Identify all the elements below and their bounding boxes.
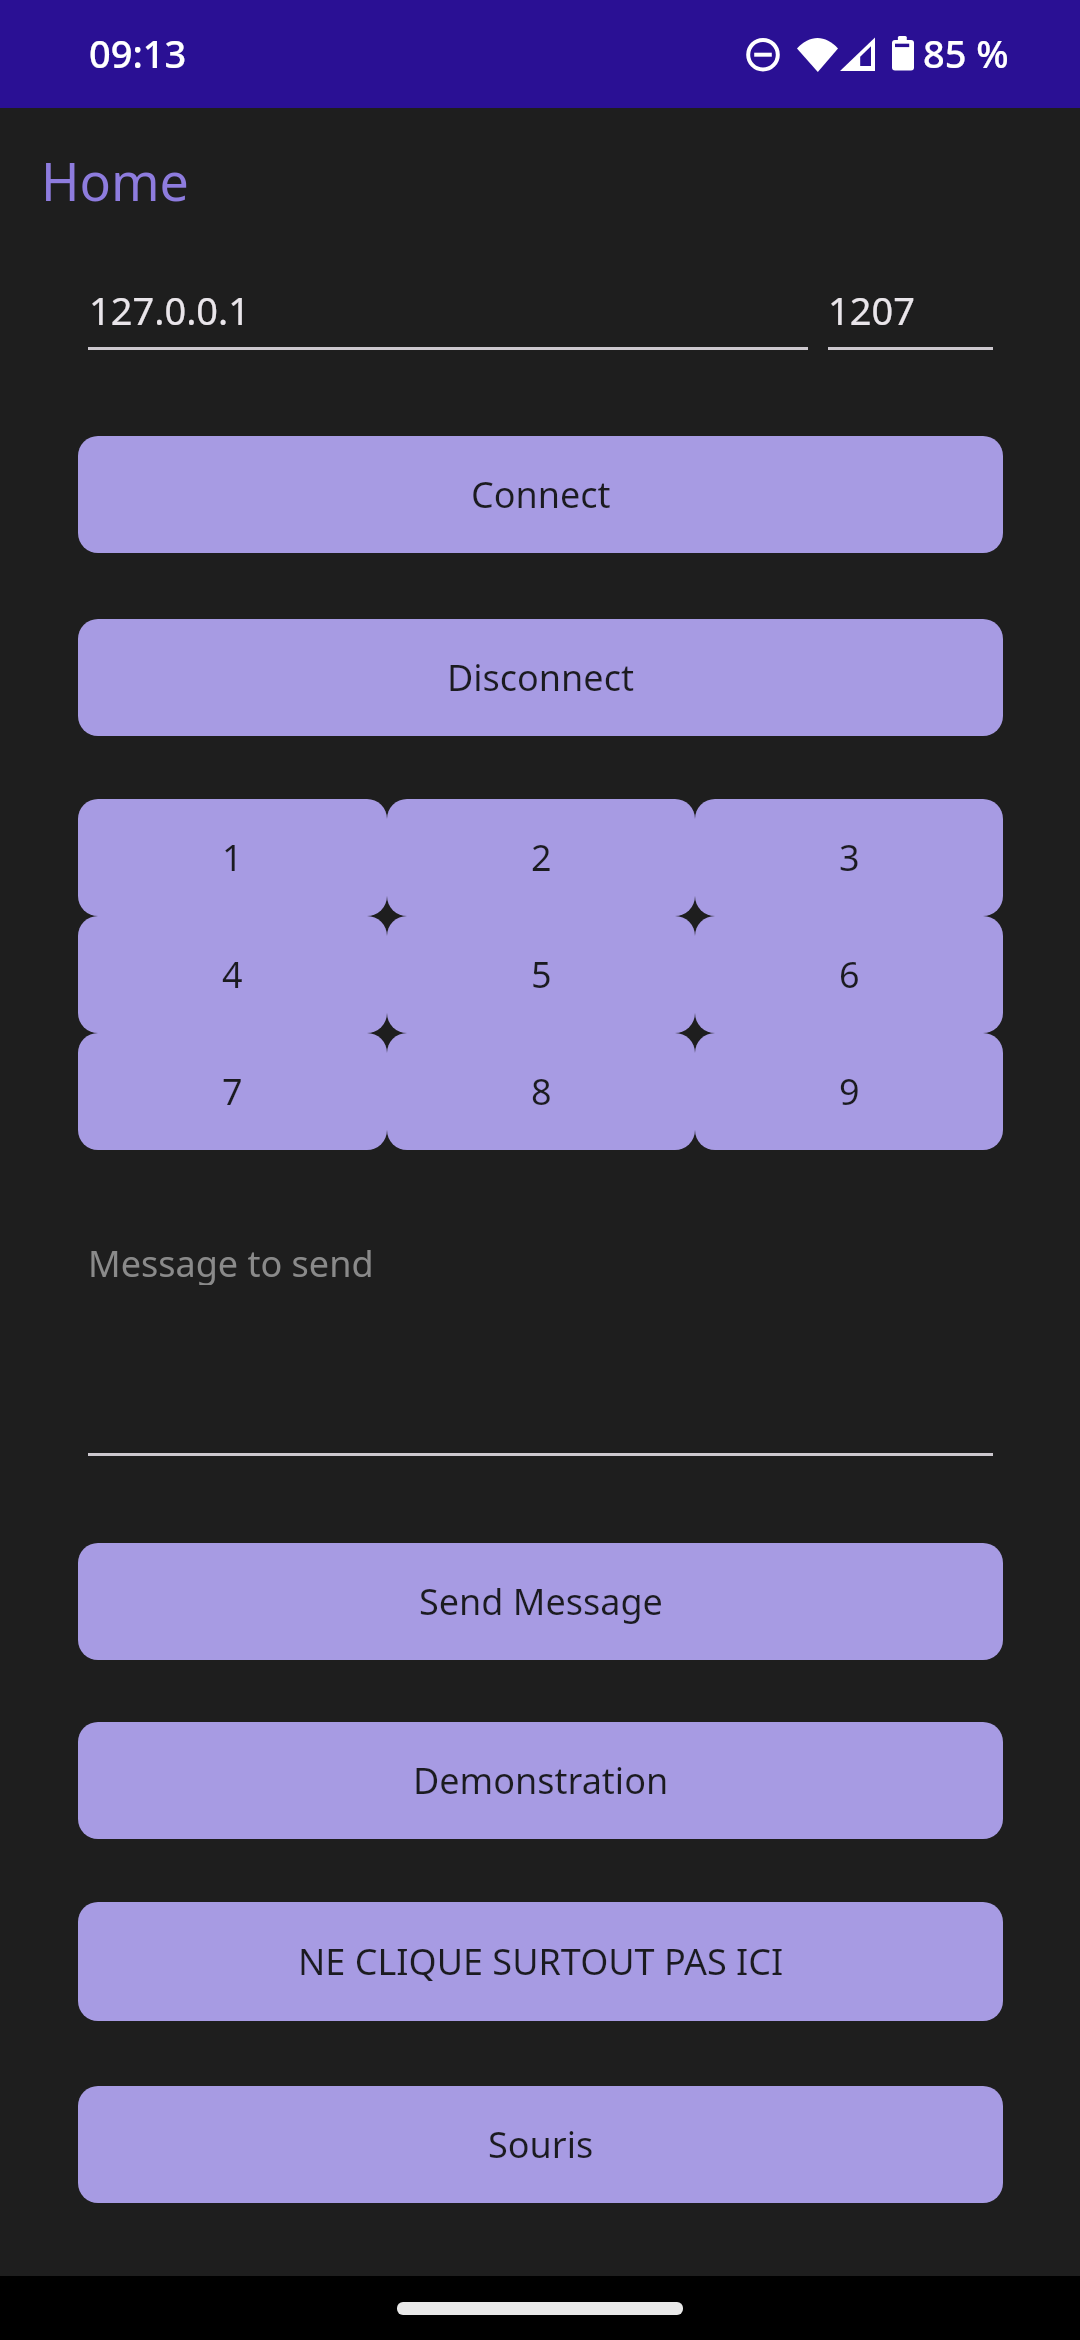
- staticText: 6: [839, 950, 860, 999]
- other: Do not disturb: [746, 38, 780, 72]
- staticText: 4: [222, 950, 243, 999]
- other: Home gesture handle: [397, 2302, 683, 2315]
- staticText: NE CLIQUE SURTOUT PAS ICI: [298, 1937, 784, 1986]
- button[interactable]: 1207: [828, 284, 993, 350]
- button[interactable]: 3: [695, 799, 1003, 916]
- button[interactable]: 5: [387, 916, 695, 1033]
- button[interactable]: 2: [387, 799, 695, 916]
- staticText: 09:13: [89, 27, 187, 71]
- other: Mobile signal: [840, 37, 875, 71]
- staticText: Souris: [488, 2120, 594, 2169]
- button[interactable]: Souris: [78, 2086, 1003, 2203]
- button[interactable]: NE CLIQUE SURTOUT PAS ICI: [78, 1902, 1003, 2021]
- staticText: 1: [222, 833, 243, 882]
- staticText: 85 %: [923, 27, 1009, 79]
- button[interactable]: 127.0.0.1: [88, 284, 808, 350]
- button[interactable]: Demonstration: [78, 1722, 1003, 1839]
- button[interactable]: Connect: [78, 436, 1003, 553]
- staticText: Connect: [471, 470, 611, 519]
- staticText: Send Message: [419, 1577, 663, 1626]
- button[interactable]: 9: [695, 1033, 1003, 1150]
- other: Wi-Fi: [797, 38, 838, 72]
- button[interactable]: 7: [78, 1033, 387, 1150]
- staticText: 9: [839, 1067, 860, 1116]
- staticText: Message to send: [88, 1239, 374, 1285]
- button[interactable]: 8: [387, 1033, 695, 1150]
- button[interactable]: 1: [78, 799, 387, 916]
- staticText: 127.0.0.1: [89, 284, 250, 332]
- staticText: 5: [531, 950, 552, 999]
- staticText: 1207: [828, 284, 915, 332]
- button[interactable]: 4: [78, 916, 387, 1033]
- other: Battery 85 percent: [892, 36, 914, 71]
- staticText: Demonstration: [413, 1756, 669, 1805]
- staticText: Home: [41, 145, 189, 216]
- button[interactable]: Send Message: [78, 1543, 1003, 1660]
- staticText: 8: [531, 1067, 552, 1116]
- staticText: 3: [839, 833, 860, 882]
- staticText: 7: [222, 1067, 243, 1116]
- button[interactable]: 6: [695, 916, 1003, 1033]
- button[interactable]: Disconnect: [78, 619, 1003, 736]
- staticText: Disconnect: [447, 653, 634, 702]
- staticText: 2: [531, 833, 552, 882]
- button[interactable]: Message to send: [88, 1239, 993, 1456]
